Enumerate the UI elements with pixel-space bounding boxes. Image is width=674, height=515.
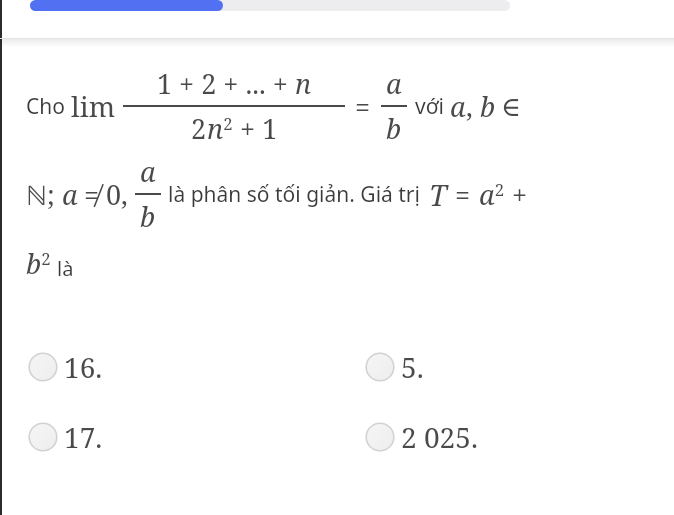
staticText: ∈ [501, 91, 521, 122]
button[interactable]: 17. [0, 402, 103, 472]
button[interactable]: 2 025. [337, 402, 478, 472]
staticText: , [466, 88, 480, 125]
staticText: b [140, 198, 156, 235]
staticText: 17. [64, 418, 103, 456]
staticText: b [386, 110, 402, 147]
staticText: T [429, 175, 447, 214]
staticText: Cho [26, 92, 71, 121]
staticText: là phân số tối giản. Giá trị [168, 180, 426, 209]
staticText: với [415, 92, 450, 121]
staticText: ℕ; [26, 176, 62, 213]
staticText: = [455, 176, 471, 213]
staticText: 0, [106, 176, 135, 213]
staticText: b [480, 88, 496, 125]
staticText: a [62, 176, 78, 213]
staticText: 5. [401, 348, 424, 386]
staticText: a [140, 153, 156, 190]
staticText: là [57, 255, 74, 282]
staticText: + [512, 176, 528, 213]
staticText: a2 [479, 176, 504, 213]
staticText: + 1 [233, 110, 278, 147]
staticText: 1 + 2 + ... + [157, 65, 295, 102]
staticText: 16. [64, 348, 103, 386]
staticText: a [450, 88, 466, 125]
button[interactable]: 16. [0, 332, 103, 402]
staticText: ≠ [84, 176, 100, 213]
staticText: n2 [207, 110, 233, 147]
staticText: n [295, 65, 312, 102]
staticText: lim [71, 87, 116, 125]
staticText: a [386, 65, 402, 102]
button[interactable] [30, 0, 510, 11]
button[interactable]: 5. [337, 332, 424, 402]
staticText: = [355, 88, 371, 125]
staticText: b2 [26, 245, 51, 282]
staticText: 2 025. [401, 418, 478, 456]
staticText: 2 [191, 110, 207, 147]
